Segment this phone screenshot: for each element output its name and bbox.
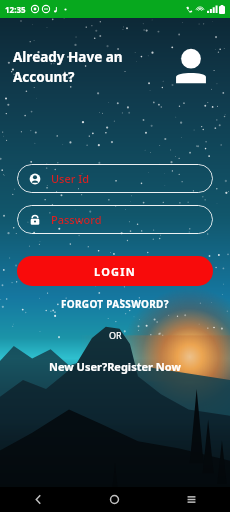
staticText: User Id [51, 171, 90, 186]
staticText: Account? [13, 68, 75, 86]
button[interactable]: LOGIN [17, 256, 213, 286]
staticText: LOGIN [94, 264, 136, 279]
staticText: New User?Register Now [49, 359, 181, 374]
button[interactable]: Back [0, 487, 76, 512]
staticText: Already Have an [13, 48, 123, 66]
staticText: OR [109, 329, 122, 341]
button[interactable]: Home [76, 487, 153, 512]
button[interactable]: FORGOT PASSWORD? [0, 297, 230, 311]
button[interactable]: Account avatar [168, 44, 214, 90]
staticText: 12:35 [5, 4, 26, 15]
button[interactable]: Recent apps [153, 487, 230, 512]
button[interactable]: New User?Register Now [0, 359, 230, 374]
button[interactable]: User Id [17, 164, 213, 193]
staticText: Password [51, 212, 102, 227]
button[interactable]: Password [17, 205, 213, 234]
staticText: FORGOT PASSWORD? [61, 297, 169, 311]
